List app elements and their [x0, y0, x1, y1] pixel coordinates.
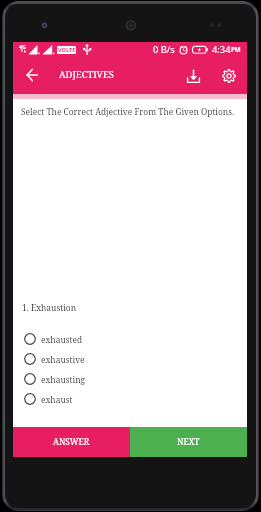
staticText: ANSWER [53, 436, 90, 447]
staticText: exhaustive [41, 354, 85, 365]
button[interactable]: ANSWER [13, 427, 130, 457]
staticText: ADJECTIVES [59, 68, 114, 81]
button[interactable]: exhaust [13, 389, 247, 409]
staticText: VOLTE [58, 46, 76, 54]
staticText: PM [231, 45, 241, 53]
button[interactable]: NEXT [130, 427, 247, 457]
button[interactable]: exhaustive [13, 349, 247, 369]
button[interactable]: Download [183, 66, 203, 86]
staticText: Select The Correct Adjective From The Gi… [21, 106, 235, 117]
button[interactable]: exhausted [13, 329, 247, 349]
staticText: NEXT [177, 436, 200, 447]
staticText: exhausted [41, 334, 83, 345]
staticText: 0 B/s [153, 43, 175, 56]
staticText: 1. Exhaustion [22, 302, 77, 313]
staticText: 4:34 [212, 43, 231, 56]
staticText: exhaust [41, 394, 73, 405]
staticText: 4G [19, 43, 26, 50]
staticText: exhausting [41, 374, 86, 385]
button[interactable]: exhausting [13, 369, 247, 389]
button[interactable]: Back [22, 65, 42, 85]
button[interactable]: Settings [219, 66, 239, 86]
